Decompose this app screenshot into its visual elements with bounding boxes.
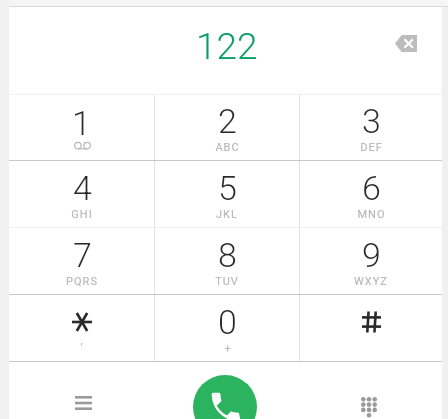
staticText: , <box>80 334 84 347</box>
staticText: 1 <box>72 103 91 143</box>
button[interactable]: 0 <box>155 295 299 361</box>
staticText: PQRS <box>66 275 98 288</box>
button[interactable]: Recents <box>59 379 107 419</box>
button[interactable]: 2 <box>155 95 299 160</box>
staticText: GHI <box>71 208 93 221</box>
staticText: 7 <box>73 235 92 275</box>
button[interactable]: 6 <box>300 161 442 227</box>
button[interactable]: Call <box>193 375 257 419</box>
button[interactable]: 7 <box>9 228 154 294</box>
button[interactable]: 3 <box>300 95 442 160</box>
staticText: 6 <box>362 168 381 208</box>
staticText: DEF <box>360 141 383 154</box>
staticText: + <box>224 342 232 355</box>
staticText: WXYZ <box>354 275 388 288</box>
button[interactable]: 9 <box>300 228 442 294</box>
staticText: TUV <box>215 275 239 288</box>
staticText: MNO <box>357 208 386 221</box>
staticText: 9 <box>362 235 381 275</box>
button[interactable]: Backspace <box>386 23 426 63</box>
staticText: ABC <box>215 141 240 154</box>
button[interactable]: 1 <box>9 95 154 160</box>
staticText: 0 <box>218 302 237 342</box>
staticText: 3 <box>362 101 381 141</box>
button[interactable] <box>300 295 442 361</box>
button[interactable]: Dialpad <box>345 383 393 419</box>
button[interactable]: , <box>9 295 154 361</box>
staticText: 5 <box>218 168 237 208</box>
staticText: 8 <box>218 235 237 275</box>
staticText: 4 <box>73 168 92 208</box>
button[interactable]: 8 <box>155 228 299 294</box>
staticText: JKL <box>216 208 238 221</box>
button[interactable]: 4 <box>9 161 154 227</box>
button[interactable]: 5 <box>155 161 299 227</box>
staticText: 2 <box>218 101 237 141</box>
staticText: 122 <box>196 25 258 68</box>
